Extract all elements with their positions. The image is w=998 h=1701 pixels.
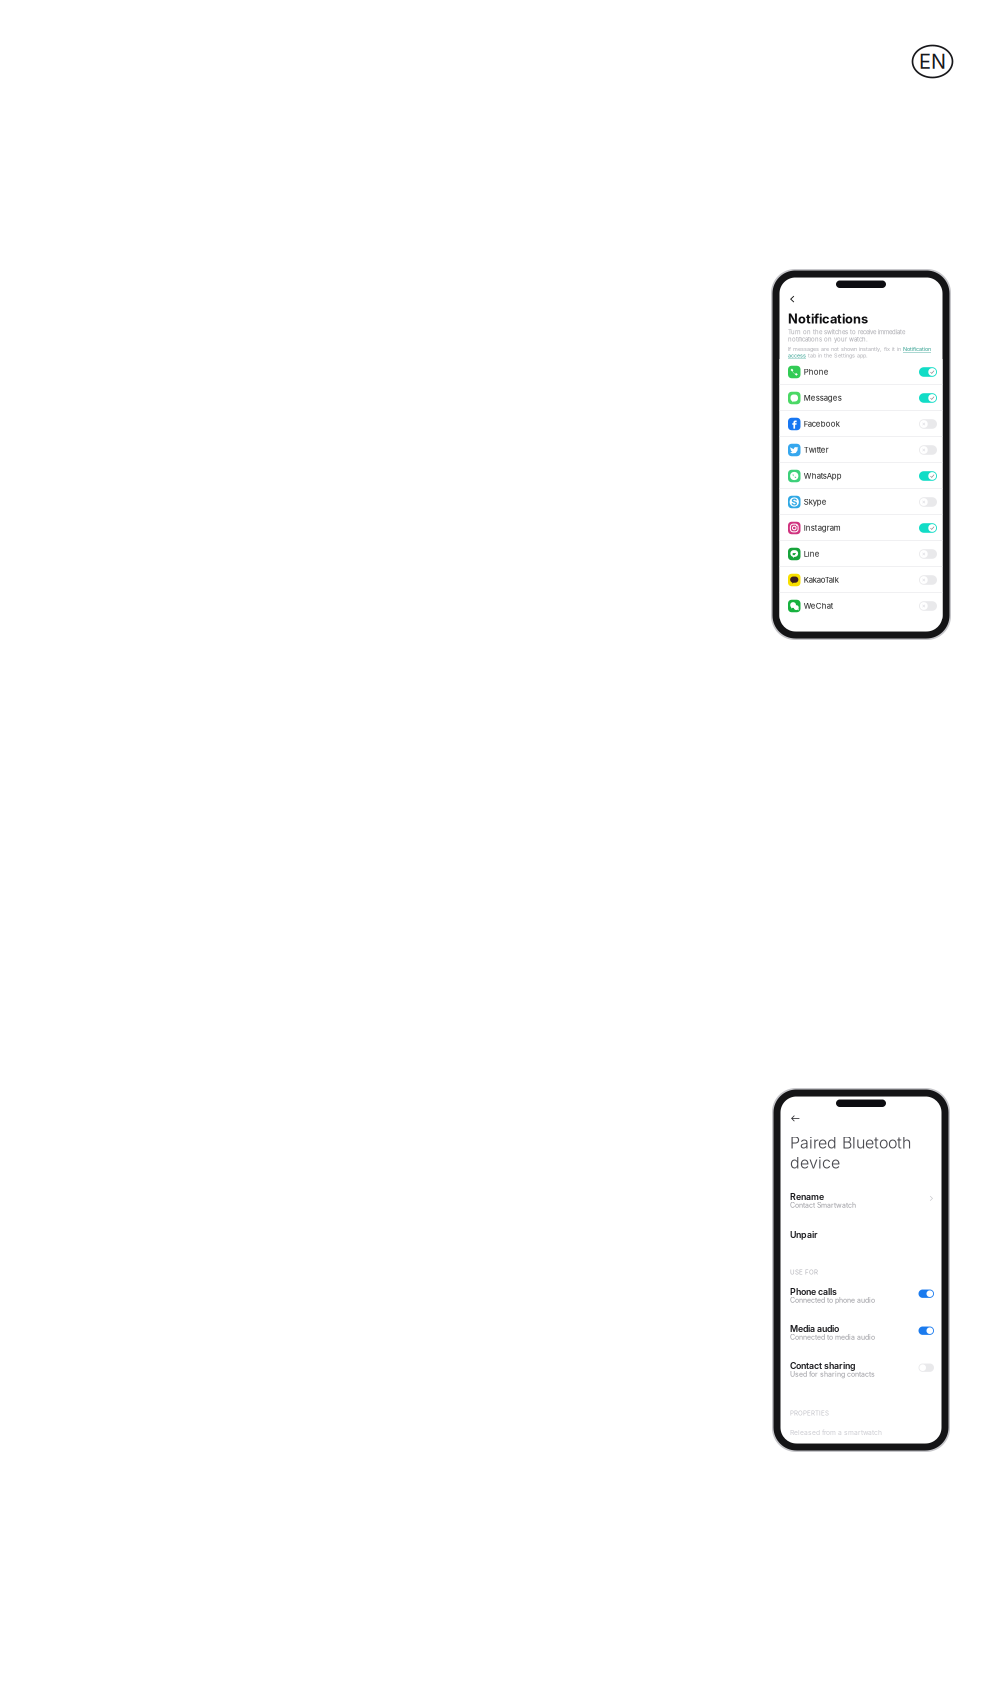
staticText: Phone calls [790, 1286, 837, 1297]
staticText: EN [919, 49, 946, 74]
staticText: Used for sharing contacts [790, 1370, 875, 1378]
staticText: KakaoTalk [804, 575, 839, 585]
staticText: S [791, 496, 797, 508]
staticText: Messages [804, 393, 842, 403]
staticText: Skype [804, 497, 827, 507]
staticText: Released from a smartwatch [790, 1428, 882, 1437]
staticText: Rename [790, 1191, 824, 1202]
button[interactable]: KakaoTalk [779, 567, 942, 593]
staticText: device [790, 1153, 840, 1172]
button[interactable]: Facebook [779, 411, 942, 437]
staticText: Phone [804, 367, 829, 377]
staticText: Connected to media audio [790, 1333, 875, 1341]
button[interactable]: Media audio [790, 1323, 934, 1341]
button[interactable]: Phone [779, 359, 942, 385]
staticText: If messages are not shown instantly, fix… [788, 346, 931, 352]
staticText: Notifications [788, 311, 868, 326]
staticText: access tab in the Settings app. [788, 352, 868, 359]
staticText: Connected to phone audio [790, 1296, 875, 1304]
button[interactable]: WhatsApp [779, 463, 942, 489]
button[interactable]: WeChat [779, 593, 942, 619]
staticText: Unpair [790, 1229, 817, 1240]
staticText: Facebook [804, 419, 840, 429]
staticText: WeChat [804, 601, 834, 611]
button[interactable]: Back [788, 1111, 803, 1125]
button[interactable]: Line [779, 541, 942, 567]
button[interactable]: Messages [779, 385, 942, 411]
staticText: Turn on the switches to receive immediat… [788, 328, 905, 343]
button[interactable]: Language: EN [912, 45, 952, 77]
staticText: Instagram [804, 523, 841, 533]
button[interactable]: Instagram [779, 515, 942, 541]
staticText: Twitter [804, 445, 829, 455]
button[interactable]: Rename [790, 1191, 934, 1209]
button[interactable]: S [779, 489, 942, 515]
button[interactable]: Twitter [779, 437, 942, 463]
button[interactable]: Contact sharing [790, 1360, 934, 1378]
staticText: Contact Smartwatch [790, 1201, 856, 1209]
staticText: WhatsApp [804, 471, 842, 481]
staticText: Line [804, 549, 820, 559]
staticText: PROPERTIES [790, 1409, 829, 1417]
button[interactable]: Phone calls [790, 1286, 934, 1304]
button[interactable]: Back [786, 292, 798, 306]
staticText: Media audio [790, 1323, 839, 1334]
staticText: USE FOR [790, 1268, 818, 1276]
staticText: Paired Bluetooth [790, 1133, 911, 1152]
button[interactable]: Unpair [790, 1229, 934, 1238]
staticText: Contact sharing [790, 1360, 856, 1371]
